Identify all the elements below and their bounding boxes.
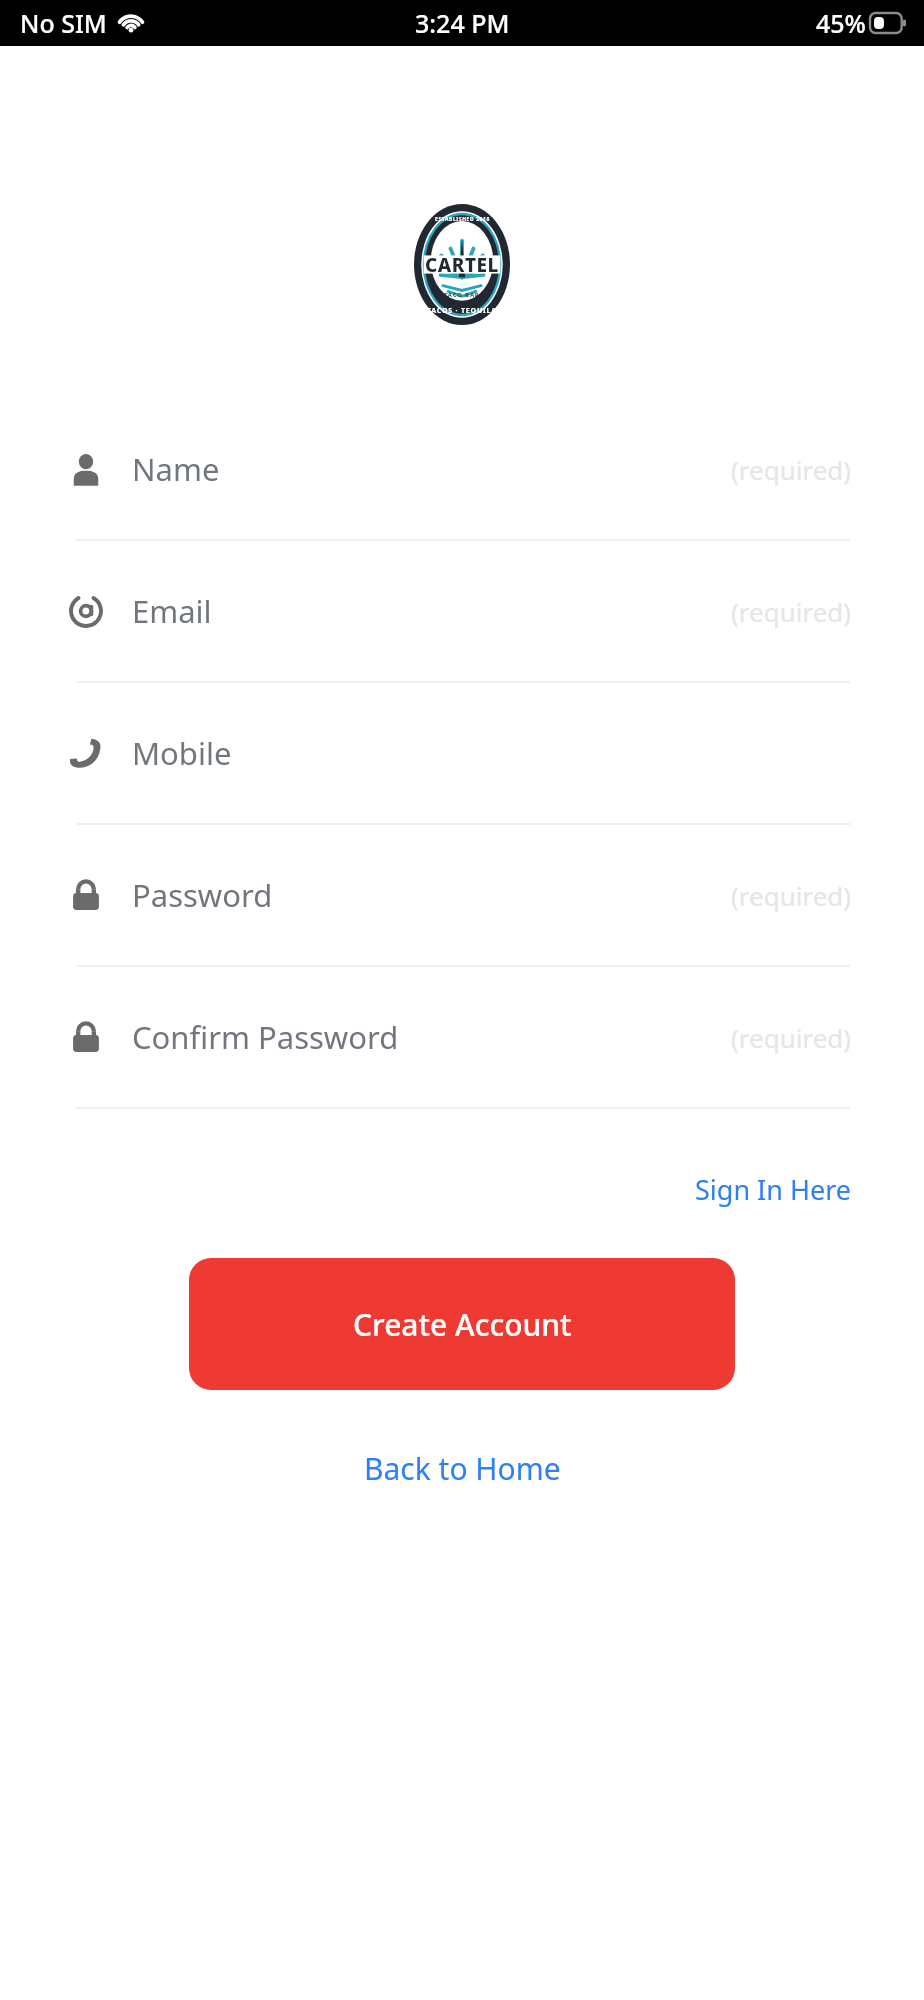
other: Password <box>69 1020 103 1054</box>
other: Name <box>69 452 103 486</box>
staticText: Create Account <box>353 1304 572 1345</box>
button[interactable]: Sign In Here <box>689 1165 858 1214</box>
staticText: (required) <box>731 1020 852 1055</box>
other: Cartel Taco Bar logo <box>414 204 510 325</box>
other: Password <box>69 878 103 912</box>
staticText: Back to Home <box>364 1448 561 1489</box>
button[interactable]: Password <box>0 825 924 967</box>
staticText: (required) <box>731 452 852 487</box>
other: Email <box>69 594 103 628</box>
staticText: No SIM <box>20 6 107 40</box>
staticText: (required) <box>731 594 852 629</box>
staticText: ESTABLISHED 2018 <box>435 216 490 223</box>
button[interactable]: Create Account <box>189 1258 735 1390</box>
button[interactable]: Back to Home <box>356 1442 569 1495</box>
staticText: 45% <box>816 6 866 40</box>
staticText: TACO BAR <box>444 291 480 299</box>
staticText: 3:24 PM <box>415 6 510 40</box>
button[interactable]: Mobile <box>0 683 924 825</box>
button[interactable]: Name <box>0 399 924 541</box>
staticText: Confirm Password <box>132 1016 399 1058</box>
staticText: CARTEL <box>425 252 499 278</box>
staticText: (required) <box>731 878 852 913</box>
other: Mobile <box>69 736 103 770</box>
staticText: Password <box>132 874 273 916</box>
button[interactable]: Email <box>0 541 924 683</box>
button[interactable]: Password <box>0 967 924 1109</box>
staticText: Mobile <box>132 732 232 774</box>
staticText: TACOS · TEQUILA <box>427 306 497 316</box>
staticText: Sign In Here <box>695 1171 852 1208</box>
staticText: Name <box>132 448 220 490</box>
staticText: Email <box>132 590 212 632</box>
